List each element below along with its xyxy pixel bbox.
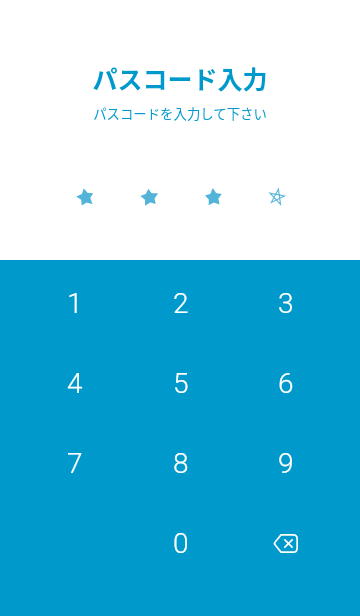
staticText: 1 bbox=[67, 287, 83, 320]
staticText: パスコード入力 bbox=[92, 60, 268, 96]
button[interactable]: 9 bbox=[233, 423, 338, 503]
staticText: 3 bbox=[278, 287, 294, 320]
button[interactable]: 7 bbox=[22, 423, 128, 503]
staticText: 7 bbox=[67, 447, 83, 480]
button[interactable]: 5 bbox=[128, 343, 233, 423]
staticText: 6 bbox=[278, 367, 294, 400]
staticText: 0 bbox=[173, 527, 189, 560]
button[interactable]: 4 bbox=[22, 343, 128, 423]
button[interactable]: 8 bbox=[128, 423, 233, 503]
staticText: 8 bbox=[173, 447, 189, 480]
staticText: 2 bbox=[173, 287, 189, 320]
staticText: 5 bbox=[173, 367, 189, 400]
button[interactable]: 2 bbox=[128, 263, 233, 343]
button[interactable]: 6 bbox=[233, 343, 338, 423]
staticText: 9 bbox=[278, 447, 294, 480]
staticText: パスコードを入力して下さい bbox=[93, 103, 267, 122]
staticText: 4 bbox=[67, 367, 83, 400]
button[interactable]: Delete bbox=[233, 503, 338, 583]
button[interactable]: 1 bbox=[22, 263, 128, 343]
button[interactable]: 0 bbox=[128, 503, 233, 583]
button[interactable]: 3 bbox=[233, 263, 338, 343]
